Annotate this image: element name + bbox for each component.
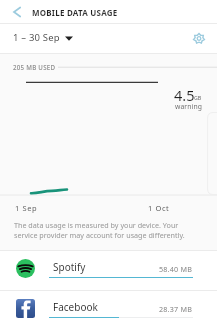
staticText: MOBILE DATA USAGE xyxy=(32,7,118,18)
staticText: 1 Oct xyxy=(148,203,170,213)
staticText: GB xyxy=(194,94,202,101)
staticText: Spotify xyxy=(53,260,86,274)
staticText: 58.40 MB xyxy=(159,264,193,274)
button[interactable]: 1 – 30 Sep xyxy=(9,27,77,47)
button[interactable]: Back xyxy=(4,0,29,23)
staticText: 1 – 30 Sep xyxy=(13,31,60,44)
button[interactable]: Facebook xyxy=(0,291,217,325)
staticText: warning xyxy=(175,102,202,111)
staticText: 4.5 xyxy=(174,85,195,105)
staticText: Facebook xyxy=(53,300,98,314)
button[interactable]: Settings xyxy=(187,26,211,50)
button[interactable]: Spotify xyxy=(0,251,217,290)
staticText: 205 MB USED xyxy=(13,63,56,71)
staticText: 28.37 MB xyxy=(159,304,193,314)
staticText: The data usage is measured by your devic… xyxy=(14,220,185,240)
staticText: 1 Sep xyxy=(15,203,38,213)
